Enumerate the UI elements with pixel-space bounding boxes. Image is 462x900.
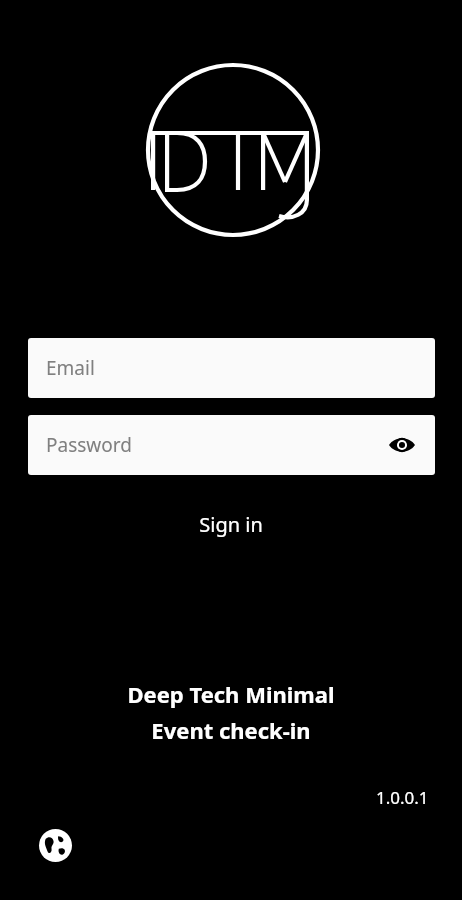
staticText: Deep Tech Minimal <box>127 679 335 709</box>
staticText: Event check-in <box>151 715 311 745</box>
button[interactable]: Email <box>28 338 435 398</box>
button[interactable]: Sign in <box>0 503 462 545</box>
staticText: 1.0.0.1 <box>376 786 429 809</box>
button[interactable]: Password <box>28 415 435 475</box>
staticText: Email <box>46 355 95 381</box>
button[interactable]: Show password <box>386 429 418 461</box>
staticText: Sign in <box>199 511 263 538</box>
button[interactable]: Language <box>33 823 77 867</box>
staticText: Password <box>46 432 132 458</box>
